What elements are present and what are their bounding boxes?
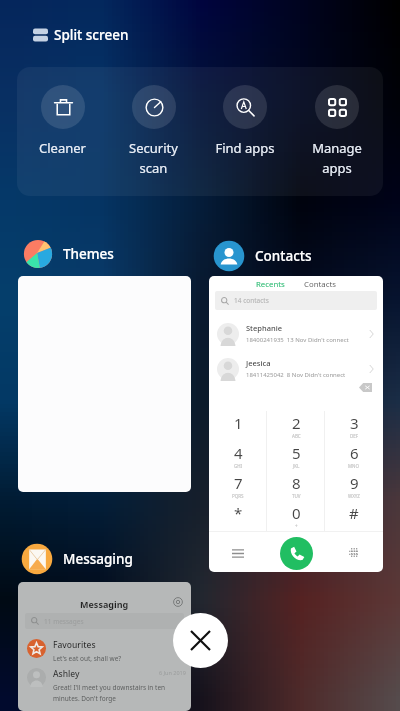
button[interactable]: # — [325, 501, 383, 531]
button[interactable]: * — [209, 501, 267, 531]
button[interactable]: Find apps — [199, 85, 291, 157]
staticText: 6 Jun 2019 — [159, 669, 186, 676]
staticText: 5 — [292, 443, 301, 463]
button[interactable]: Call — [280, 537, 313, 570]
staticText: Great! I'll meet you downstairs in ten m… — [53, 683, 166, 703]
staticText: Manage apps — [312, 139, 362, 177]
button[interactable]: Recents — [209, 276, 383, 572]
button[interactable]: Backspace — [353, 378, 377, 396]
staticText: Jeesica — [246, 358, 271, 368]
staticText: Stephanie — [246, 323, 282, 333]
staticText: # — [349, 503, 359, 523]
staticText: Messaging — [63, 550, 133, 568]
button[interactable]: Contacts — [212, 239, 312, 273]
button[interactable]: 5 — [267, 441, 325, 471]
button[interactable]: Cleaner — [17, 85, 108, 157]
button[interactable]: 14 contacts — [215, 291, 377, 310]
staticText: + — [295, 523, 298, 529]
staticText: Messaging — [80, 598, 129, 610]
staticText: Split screen — [54, 26, 129, 44]
button[interactable]: Themes — [23, 239, 114, 269]
staticText: 1 — [234, 413, 243, 433]
button[interactable]: 1 — [209, 411, 267, 441]
staticText: Let's eat out, shall we? — [53, 654, 122, 663]
staticText: 18400241935 13 Nov Didn't connect — [246, 336, 349, 344]
staticText: Contacts — [255, 247, 312, 265]
button[interactable]: Jeesica — [217, 351, 383, 386]
staticText: * — [234, 503, 243, 523]
button[interactable]: Manage apps — [291, 85, 383, 177]
staticText: 2 — [292, 413, 301, 433]
staticText: Find apps — [215, 139, 275, 157]
staticText: Security scan — [129, 139, 178, 177]
staticText: 0 — [292, 503, 301, 523]
button[interactable]: Messaging — [18, 582, 191, 711]
staticText: Themes — [63, 245, 114, 263]
button[interactable]: 6 — [325, 441, 383, 471]
staticText: TUV — [292, 493, 301, 499]
button[interactable]: 9 — [325, 471, 383, 501]
staticText: ABC — [292, 433, 301, 439]
staticText: 6 — [350, 443, 359, 463]
button[interactable]: Menu — [209, 532, 267, 572]
staticText: Ashley — [53, 668, 80, 680]
staticText: MNO — [348, 463, 360, 469]
button[interactable]: Ashley — [27, 668, 191, 703]
staticText: DEF — [350, 433, 359, 439]
staticText: 18411425042 8 Nov Didn't connect — [246, 371, 346, 379]
button[interactable]: 8 — [267, 471, 325, 501]
staticText: WXYZ — [348, 493, 360, 499]
staticText: 4 — [234, 443, 243, 463]
button[interactable]: Recents — [256, 279, 285, 290]
button[interactable]: Close all — [173, 613, 228, 668]
button[interactable]: Messaging — [20, 542, 133, 576]
staticText: GHI — [234, 463, 243, 469]
button[interactable]: Security scan — [108, 85, 199, 177]
button[interactable]: 2 — [267, 411, 325, 441]
staticText: Cleaner — [39, 139, 86, 157]
staticText: 7 — [234, 473, 243, 493]
staticText: 9 — [350, 473, 359, 493]
staticText: 11 messages — [44, 617, 84, 626]
staticText: 8 — [292, 473, 301, 493]
staticText: 3 — [350, 413, 359, 433]
button[interactable]: Favourites — [27, 639, 191, 663]
button[interactable]: 7 — [209, 471, 267, 501]
button[interactable]: Dialpad — [325, 532, 383, 572]
button[interactable]: 4 — [209, 441, 267, 471]
staticText: 14 contacts — [234, 296, 269, 305]
button[interactable] — [18, 276, 191, 492]
button[interactable]: Contacts — [304, 279, 336, 290]
staticText: JKL — [293, 463, 300, 469]
button[interactable]: Split screen — [33, 26, 129, 44]
staticText: Favourites — [53, 639, 96, 651]
staticText: PQRS — [232, 493, 244, 499]
button[interactable]: 0 — [267, 501, 325, 531]
button[interactable]: Stephanie — [217, 316, 383, 351]
button[interactable]: 3 — [325, 411, 383, 441]
